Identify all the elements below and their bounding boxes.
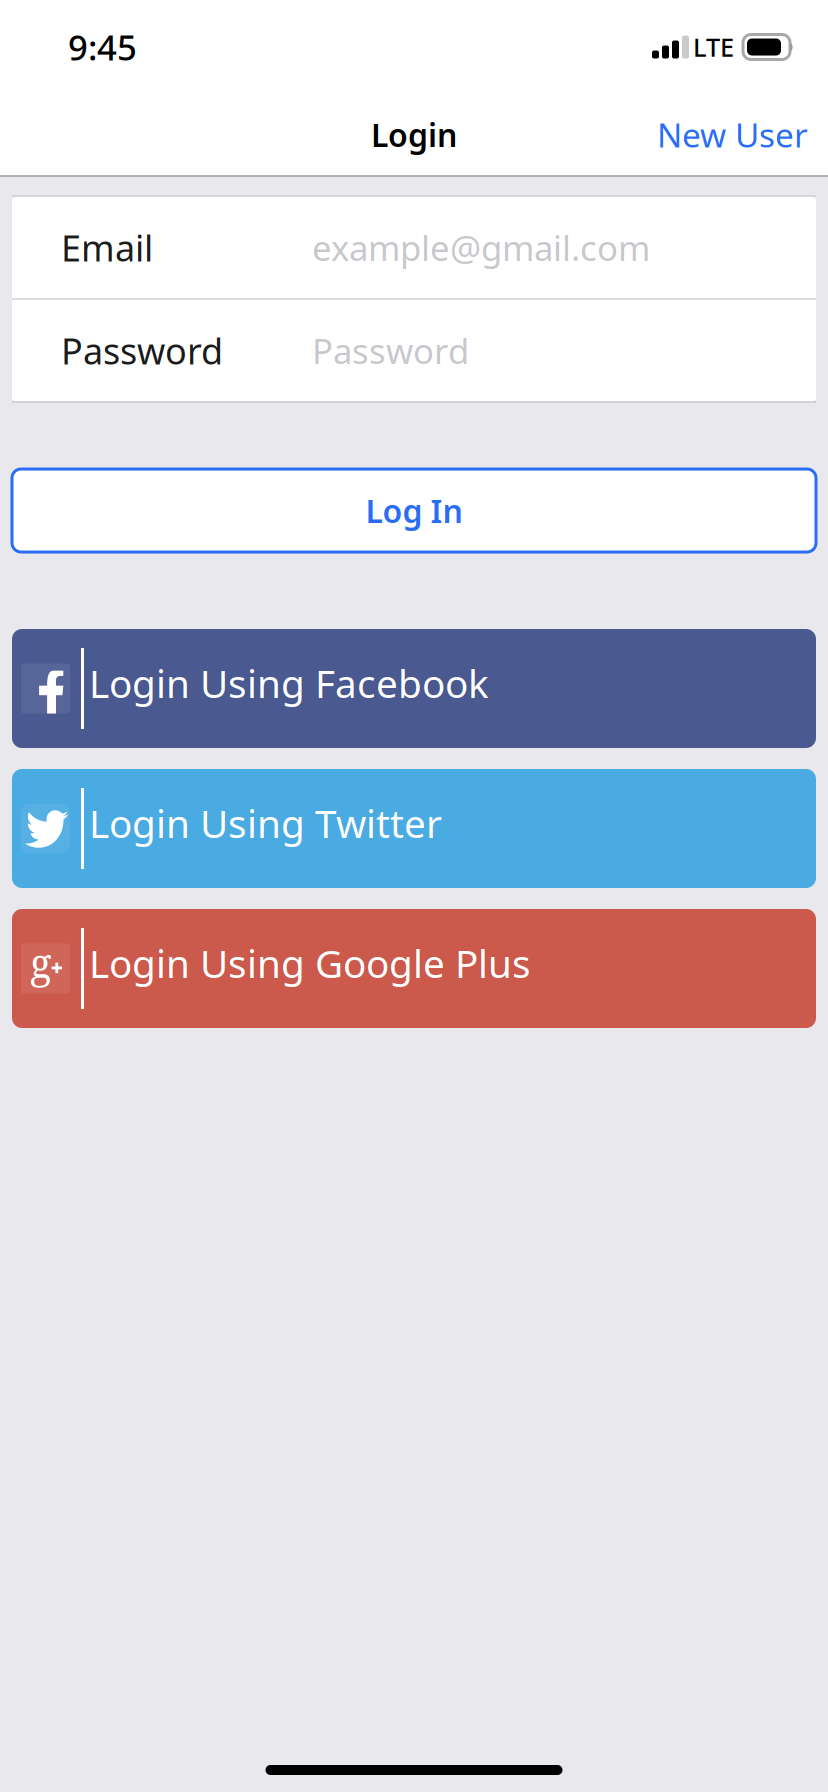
staticText: Email: [61, 224, 153, 271]
staticText: Log In: [365, 489, 462, 532]
staticText: Login Using Twitter: [89, 797, 442, 849]
staticText: Login Using Facebook: [89, 657, 489, 709]
button[interactable]: Password: [12, 300, 816, 401]
button[interactable]: New User: [637, 94, 828, 175]
button[interactable]: Login Using Facebook: [12, 629, 816, 748]
button[interactable]: g: [12, 909, 816, 1028]
staticText: Login Using Google Plus: [89, 937, 531, 989]
staticText: Login: [371, 113, 457, 156]
staticText: Password: [61, 327, 223, 374]
staticText: LTE: [693, 30, 734, 64]
staticText: example@gmail.com: [312, 224, 650, 270]
staticText: New User: [657, 112, 808, 157]
button[interactable]: Login Using Twitter: [12, 769, 816, 888]
staticText: g: [30, 935, 52, 989]
button[interactable]: Email: [12, 197, 816, 298]
staticText: 9:45: [68, 24, 137, 70]
button[interactable]: Log In: [12, 469, 816, 552]
staticText: Password: [312, 327, 469, 373]
